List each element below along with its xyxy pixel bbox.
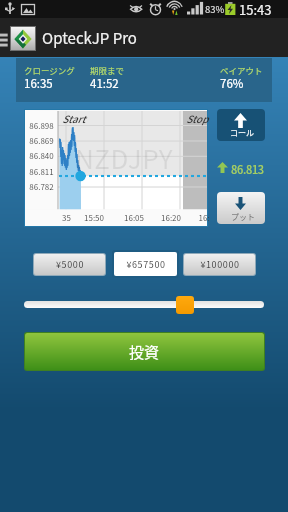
staticText: ¥100000 [200,258,240,271]
staticText: OpteckJP Pro [42,27,137,49]
staticText: 15:43 [239,0,272,18]
button[interactable]: Menu [0,29,8,46]
button[interactable]: 86.898 [24,109,208,227]
staticText: Stop [186,111,209,125]
staticText: ペイアウト [220,64,263,76]
staticText: コール [230,127,254,139]
staticText: 86.840 [29,150,54,162]
staticText: 86.811 [29,166,54,178]
button[interactable]: ¥100000 [184,254,255,275]
staticText: 83% [205,2,225,16]
staticText: プット [231,211,255,223]
button[interactable]: コール [217,109,265,141]
button[interactable]: ¥657500 [114,252,177,276]
staticText: 投資 [129,341,160,363]
staticText: Start [62,111,86,125]
staticText: 35 [62,212,71,224]
staticText: クロージング [24,64,75,76]
button[interactable]: プット [217,192,265,224]
staticText: 86.898 [29,120,54,132]
staticText: 86.869 [29,135,54,147]
staticText: 41:52 [90,75,119,92]
staticText: 16:20 [161,212,181,224]
button[interactable]: Amount slider [176,296,194,314]
staticText: 16: [198,212,210,224]
staticText: 期限まで [90,64,125,76]
staticText: 15:50 [84,212,104,224]
staticText: ¥5000 [56,258,84,271]
button[interactable]: ¥5000 [34,254,105,275]
staticText: 16:05 [124,212,144,224]
staticText: 86.813 [231,161,264,177]
staticText: 76% [220,75,244,92]
staticText: 16:35 [24,75,53,92]
staticText: NZDJPY [75,139,174,177]
staticText: 86.782 [29,181,54,193]
staticText: ¥657500 [126,258,166,271]
button[interactable]: 投資 [25,333,264,370]
